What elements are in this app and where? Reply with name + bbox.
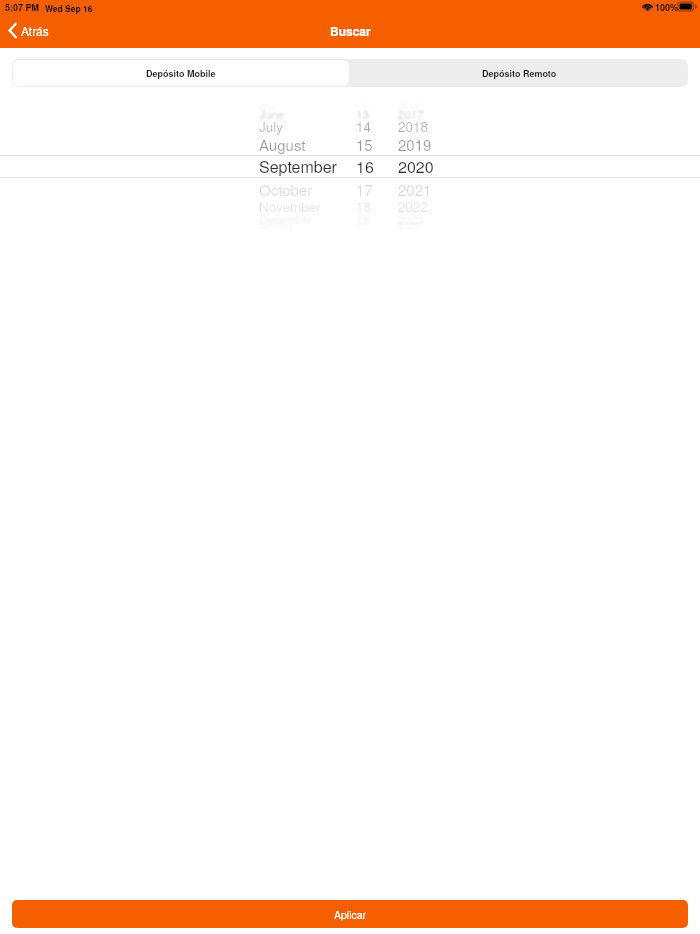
button[interactable]: Aplicar [12, 900, 688, 928]
staticText: 18 [356, 197, 372, 216]
other: Atrás [7, 22, 18, 39]
staticText: June [259, 106, 284, 122]
staticText: Atrás [21, 22, 49, 39]
staticText: October [259, 179, 313, 200]
staticText: August [259, 134, 306, 155]
button[interactable]: September 16 2020 [0, 100, 700, 232]
button[interactable]: Depósito Remoto [350, 59, 688, 87]
staticText: July [259, 117, 283, 136]
staticText: Depósito Mobile [146, 67, 216, 80]
button[interactable]: Atrás [7, 18, 49, 42]
staticText: 2019 [398, 134, 432, 155]
staticText: 19 [356, 211, 369, 227]
staticText: 17 [356, 179, 373, 200]
staticText: 2020 [398, 155, 434, 178]
staticText: 2017 [398, 106, 424, 122]
staticText: Depósito Remoto [482, 67, 557, 80]
staticText: 12 [356, 99, 367, 113]
staticText: September [259, 155, 337, 178]
staticText: 100% [655, 1, 679, 14]
staticText: 13 [356, 106, 369, 122]
staticText: Wed Sep 16 [45, 2, 93, 14]
staticText: 2021 [398, 179, 432, 200]
staticText: 2022 [398, 197, 429, 216]
staticText: 2016 [398, 99, 420, 113]
staticText: November [259, 197, 321, 216]
button[interactable]: Depósito Mobile [13, 60, 349, 86]
staticText: 5:07 PM [5, 1, 40, 14]
staticText: 15 [356, 134, 373, 155]
staticText: Aplicar [334, 907, 367, 922]
staticText: Buscar [330, 22, 371, 39]
staticText: 2023 [398, 211, 424, 227]
staticText: 2018 [398, 117, 429, 136]
staticText: December [259, 211, 313, 227]
staticText: 16 [356, 155, 374, 178]
staticText: 14 [356, 117, 372, 136]
